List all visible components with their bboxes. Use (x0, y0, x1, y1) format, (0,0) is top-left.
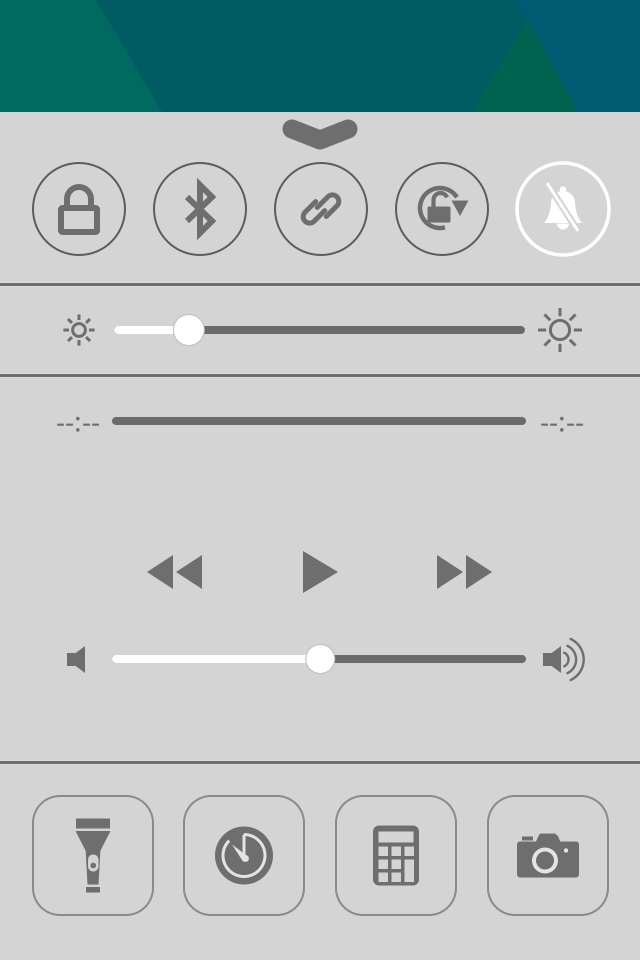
button[interactable]: Camera (488, 796, 608, 915)
button[interactable]: Rotation Lock (396, 163, 488, 255)
button[interactable]: Airplane Mode (33, 163, 125, 255)
button[interactable]: Timer (184, 796, 304, 915)
button[interactable]: Do Not Disturb (517, 163, 609, 255)
button[interactable]: Bluetooth (154, 163, 246, 255)
button[interactable]: Flashlight (33, 796, 153, 915)
staticText: --:-- (56, 402, 100, 440)
button[interactable]: AirDrop (275, 163, 367, 255)
button[interactable]: Fast Forward (437, 555, 493, 589)
button[interactable]: Calculator (336, 796, 456, 915)
button[interactable]: Rewind (147, 555, 203, 589)
button[interactable]: Play (303, 551, 339, 593)
staticText: --:-- (540, 402, 584, 440)
